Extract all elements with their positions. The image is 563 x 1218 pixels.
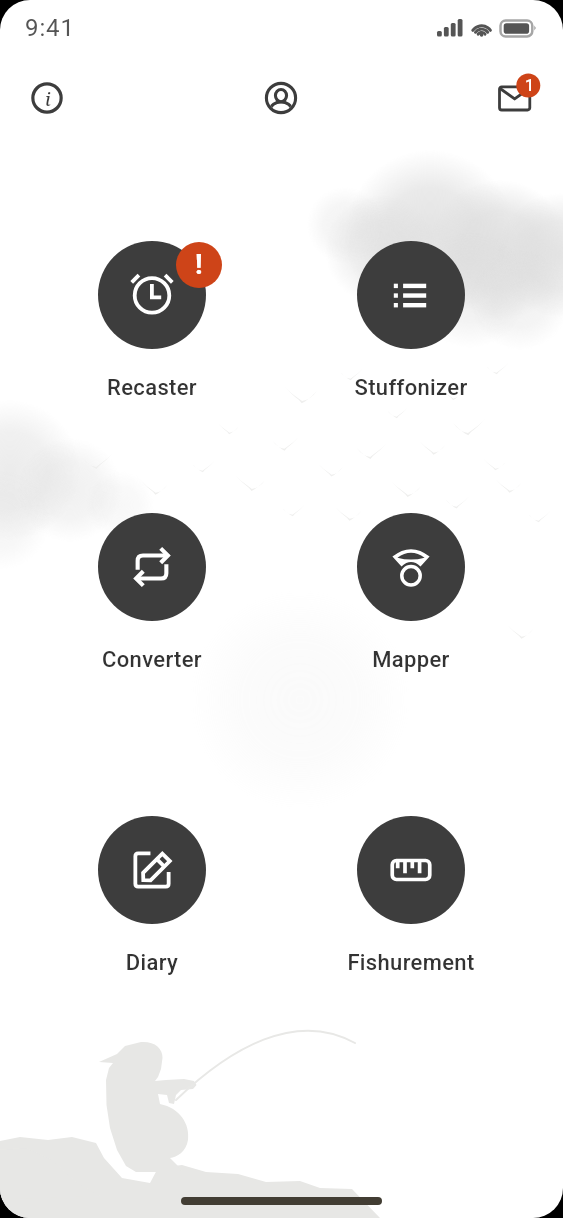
- button[interactable]: Messages: [490, 68, 548, 126]
- staticText: !: [195, 248, 203, 281]
- staticText: Fishurement: [321, 950, 501, 976]
- staticText: 9:41: [25, 14, 75, 42]
- staticText: Diary: [62, 950, 242, 976]
- staticText: Recaster: [62, 375, 242, 401]
- staticText: 1: [525, 76, 535, 95]
- button[interactable]: Fishurement: [321, 786, 501, 984]
- staticText: Stuffonizer: [321, 375, 501, 401]
- button[interactable]: Stuffonizer: [321, 211, 501, 409]
- staticText: Mapper: [321, 647, 501, 673]
- button[interactable]: Recaster: [62, 211, 242, 409]
- staticText: Converter: [62, 647, 242, 673]
- button[interactable]: Mapper: [321, 483, 501, 681]
- staticText: i: [45, 87, 51, 112]
- button[interactable]: Diary: [62, 786, 242, 984]
- button[interactable]: Profile: [255, 72, 307, 124]
- button[interactable]: Information: [21, 72, 73, 124]
- button[interactable]: Converter: [62, 483, 242, 681]
